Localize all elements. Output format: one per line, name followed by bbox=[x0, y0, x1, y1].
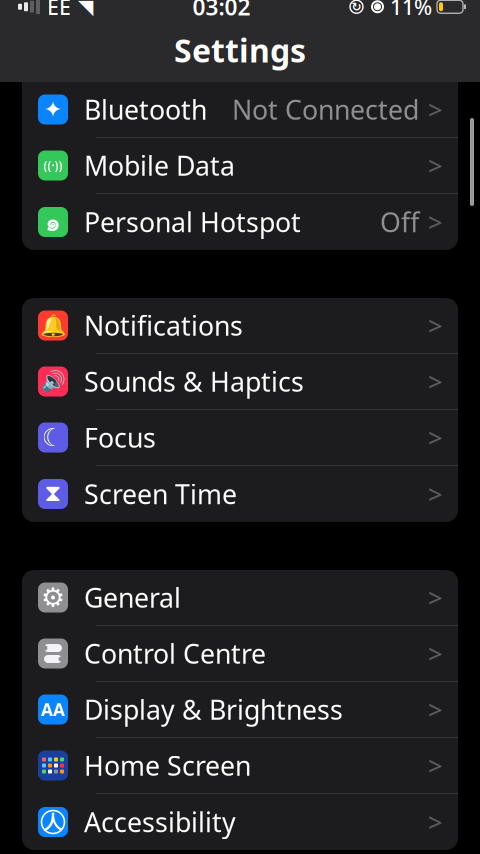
button[interactable]: ✦ bbox=[22, 82, 458, 138]
button[interactable]: 🔔 bbox=[22, 298, 458, 354]
staticText: > bbox=[428, 805, 442, 839]
staticText: > bbox=[428, 309, 442, 342]
staticText: Home Screen bbox=[84, 748, 251, 783]
staticText: Focus bbox=[84, 420, 156, 455]
staticText: ⚙ bbox=[41, 582, 65, 613]
button[interactable]: Control Centre bbox=[22, 626, 458, 682]
button[interactable]: 人 bbox=[22, 794, 458, 850]
staticText: Accessibility bbox=[84, 804, 236, 840]
staticText: > bbox=[428, 693, 442, 726]
staticText: Control Centre bbox=[84, 636, 266, 671]
staticText: Sounds & Haptics bbox=[84, 364, 304, 399]
staticText: ((·)) bbox=[43, 157, 62, 173]
staticText: 11% bbox=[390, 0, 432, 21]
button[interactable]: 🔊 bbox=[22, 354, 458, 410]
staticText: ↻ bbox=[351, 0, 361, 13]
staticText: > bbox=[428, 637, 442, 670]
staticText: Display & Brightness bbox=[84, 692, 343, 727]
staticText: 🔔 bbox=[39, 313, 66, 338]
staticText: > bbox=[428, 149, 442, 182]
staticText: ⧗ bbox=[44, 482, 61, 506]
staticText: ◥ bbox=[78, 0, 93, 18]
staticText: > bbox=[428, 477, 442, 511]
staticText: Off bbox=[380, 204, 419, 240]
button[interactable]: Settings bbox=[174, 29, 306, 71]
staticText: ✦ bbox=[43, 97, 62, 122]
staticText: > bbox=[428, 205, 442, 239]
staticText: General bbox=[84, 580, 181, 615]
button[interactable]: ๑ bbox=[22, 194, 458, 250]
staticText: EE bbox=[47, 0, 71, 21]
button[interactable]: ☾ bbox=[22, 410, 458, 466]
staticText: ☾ bbox=[41, 423, 64, 452]
staticText: ๑ bbox=[45, 202, 61, 242]
button[interactable]: Home Screen bbox=[22, 738, 458, 794]
staticText: > bbox=[428, 93, 442, 126]
staticText: Personal Hotspot bbox=[84, 204, 301, 240]
button[interactable]: ◕ bbox=[22, 26, 458, 82]
staticText: Bluetooth bbox=[84, 92, 207, 127]
button[interactable]: ⧗ bbox=[22, 466, 458, 522]
staticText: Notifications bbox=[84, 308, 243, 343]
staticText: Not Connected bbox=[232, 92, 419, 127]
staticText: AA bbox=[41, 698, 65, 721]
staticText: > bbox=[428, 749, 442, 782]
staticText: Screen Time bbox=[84, 476, 237, 512]
button[interactable]: ⚙ bbox=[22, 570, 458, 626]
staticText: 🔊 bbox=[40, 370, 65, 393]
staticText: Mobile Data bbox=[84, 148, 235, 183]
staticText: 人 bbox=[43, 810, 62, 833]
staticText: > bbox=[428, 421, 442, 454]
staticText: Settings bbox=[174, 29, 306, 71]
staticText: TALKTALK7 1000C bbox=[198, 36, 419, 71]
button[interactable]: AA bbox=[22, 682, 458, 738]
staticText: 03:02 bbox=[192, 0, 250, 22]
button[interactable]: ((·)) bbox=[22, 138, 458, 194]
staticText: > bbox=[428, 581, 442, 614]
staticText: > bbox=[428, 365, 442, 398]
